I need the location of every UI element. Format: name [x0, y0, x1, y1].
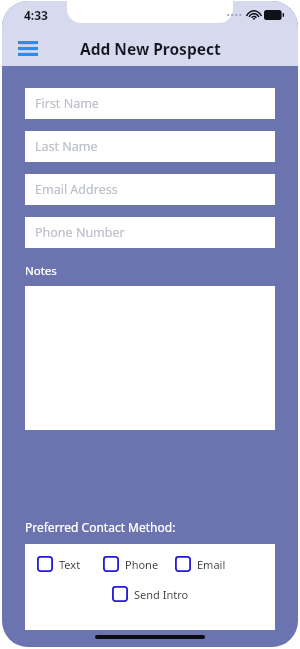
button[interactable]: Phone Number — [25, 217, 275, 248]
button[interactable]: Email — [175, 556, 226, 572]
staticText: First Name — [35, 95, 99, 112]
button[interactable]: Send Intro — [112, 586, 189, 602]
button[interactable]: Phone — [103, 556, 159, 572]
staticText: Text — [59, 557, 81, 572]
staticText: Preferred Contact Method: — [25, 519, 176, 535]
staticText: Add New Prospect — [80, 38, 221, 59]
button[interactable]: Email Address — [25, 174, 275, 205]
staticText: Email — [197, 557, 226, 572]
staticText: Notes — [25, 263, 57, 279]
staticText: 4:33 — [24, 7, 48, 23]
button[interactable]: First Name — [25, 88, 275, 119]
button[interactable]: Text — [37, 556, 81, 572]
button[interactable]: Menu — [10, 31, 46, 66]
staticText: Last Name — [35, 138, 98, 155]
staticText: Phone — [125, 557, 159, 572]
button[interactable]: Last Name — [25, 131, 275, 162]
staticText: Phone Number — [35, 224, 125, 241]
staticText: Email Address — [35, 181, 118, 198]
staticText: Send Intro — [134, 587, 189, 602]
